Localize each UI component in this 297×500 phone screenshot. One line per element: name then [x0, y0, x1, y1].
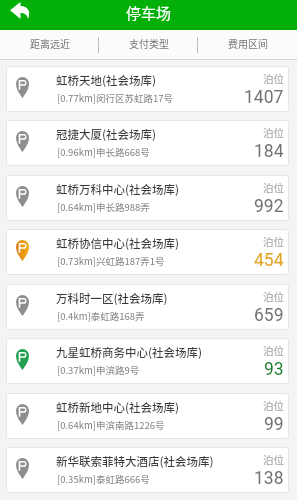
staticText: 184 [254, 141, 284, 162]
staticText: 支付类型 [129, 36, 169, 50]
staticText: 659 [254, 305, 284, 326]
button[interactable]: 支付类型 [99, 30, 198, 59]
staticText: [0.37km]申滨路9号 [57, 363, 269, 377]
staticText: 泊位 [263, 125, 284, 140]
staticText: [0.64km]申长路988弄 [57, 200, 269, 214]
staticText: 992 [254, 196, 284, 217]
staticText: 虹桥协信中心(社会场库) [56, 235, 268, 252]
staticText: 泊位 [263, 398, 284, 413]
staticText: 1407 [244, 87, 284, 108]
staticText: 138 [254, 468, 284, 489]
staticText: [0.64km]申滨南路1226号 [57, 418, 269, 432]
button[interactable]: 虹桥新地中心(社会场库) [6, 393, 289, 439]
staticText: [0.77km]闵行区苏虹路17号 [57, 91, 269, 105]
staticText: 费用区间 [228, 36, 268, 50]
button[interactable]: 虹桥天地(社会场库) [6, 66, 289, 112]
staticText: [0.73km]兴虹路187弄1号 [57, 254, 269, 268]
staticText: 454 [254, 250, 284, 271]
button[interactable]: 费用区间 [198, 30, 297, 59]
staticText: 停车场 [126, 2, 172, 24]
staticText: 泊位 [263, 343, 284, 358]
staticText: 万科时一区(社会场库) [56, 290, 268, 307]
staticText: [0.35km]泰虹路666号 [57, 472, 269, 486]
button[interactable]: 新华联索菲特大酒店(社会场库) [6, 447, 289, 493]
button[interactable]: 虹桥协信中心(社会场库) [6, 229, 289, 275]
staticText: 93 [264, 359, 284, 380]
staticText: 虹桥新地中心(社会场库) [56, 399, 268, 416]
staticText: 新华联索菲特大酒店(社会场库) [56, 453, 268, 470]
button[interactable]: 万科时一区(社会场库) [6, 284, 289, 330]
staticText: 泊位 [263, 289, 284, 304]
staticText: 冠捷大厦(社会场库) [56, 126, 268, 143]
button[interactable]: 虹桥万科中心(社会场库) [6, 175, 289, 221]
staticText: 虹桥万科中心(社会场库) [56, 181, 268, 198]
staticText: [0.4km]泰虹路168弄 [57, 309, 269, 323]
button[interactable]: 距离远近 [0, 30, 99, 59]
staticText: 距离远近 [30, 36, 70, 50]
staticText: 泊位 [263, 71, 284, 86]
staticText: 99 [264, 414, 284, 435]
staticText: 泊位 [263, 234, 284, 249]
button[interactable]: Back [0, 0, 40, 30]
staticText: 九星虹桥商务中心(社会场库) [56, 344, 268, 361]
staticText: 泊位 [263, 180, 284, 195]
staticText: 虹桥天地(社会场库) [56, 72, 268, 89]
button[interactable]: 冠捷大厦(社会场库) [6, 120, 289, 166]
button[interactable]: 九星虹桥商务中心(社会场库) [6, 338, 289, 384]
staticText: [0.96km]申长路668号 [57, 145, 269, 159]
staticText: 泊位 [263, 452, 284, 467]
